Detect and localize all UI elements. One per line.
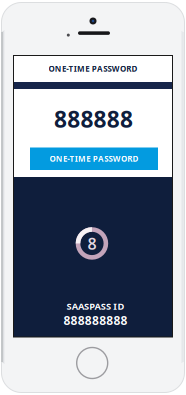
button[interactable]: ONE-TIME PASSWORD (30, 147, 158, 170)
staticText: ONE-TIME PASSWORD (48, 63, 137, 74)
staticText: SAASPASS ID (66, 300, 124, 312)
staticText: 888888 (54, 104, 133, 134)
staticText: 8 (87, 233, 96, 254)
staticText: 888888888 (63, 312, 128, 328)
staticText: ONE-TIME PASSWORD (49, 153, 138, 164)
